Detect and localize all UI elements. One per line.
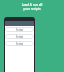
staticText: Script (16, 42, 24, 46)
button[interactable]: Script (5, 41, 34, 46)
staticText: Script (16, 35, 24, 39)
button[interactable]: Script (5, 27, 34, 32)
button[interactable]: Script (5, 34, 34, 39)
staticText: Script (16, 28, 24, 32)
staticText: Load & run all your scripts (0, 3, 64, 11)
